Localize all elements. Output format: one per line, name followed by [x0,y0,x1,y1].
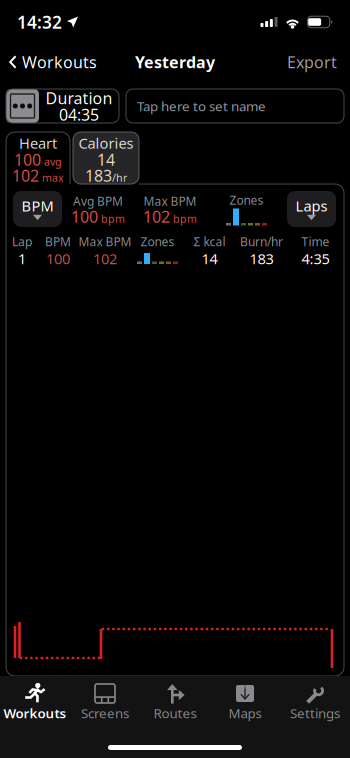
staticText: Settings [290,704,340,722]
staticText: Yesterday [135,51,215,73]
staticText: Avg BPM [73,193,123,209]
button[interactable]: Screens [70,679,140,723]
staticText: 102 [93,249,117,268]
staticText: avg [44,154,62,169]
button[interactable]: Calories [73,132,139,184]
staticText: Routes [153,704,196,722]
staticText: Laps [295,196,327,216]
staticText: Calories [78,133,133,153]
staticText: Tap here to set name [137,97,266,115]
staticText: 100 [46,249,70,268]
staticText: 183 [249,249,273,268]
staticText: Screens [81,704,129,722]
staticText: Burn/hr [240,233,283,249]
button[interactable]: Laps [287,191,336,227]
staticText: 14 [97,149,115,170]
staticText: 100 [71,206,98,227]
staticText: Maps [228,704,261,722]
button[interactable]: Routes [140,679,210,723]
staticText: Σ kcal [193,233,225,249]
staticText: 183 [85,165,112,186]
staticText: BPM [21,196,53,216]
staticText: Zones [140,233,174,249]
staticText: Workouts [22,51,97,73]
staticText: max [42,170,64,185]
staticText: Zones [229,192,263,208]
staticText: 04:35 [59,104,99,125]
staticText: Time [301,233,329,249]
staticText: Max BPM [143,193,196,209]
button[interactable]: Heart [6,132,70,184]
staticText: 14:32 [17,10,62,33]
staticText: bpm [101,211,125,226]
button[interactable]: Maps [210,679,280,723]
button[interactable]: Export [274,44,350,80]
staticText: 14 [201,249,217,268]
staticText: Lap [12,233,32,249]
staticText: Max BPM [78,233,131,249]
staticText: Heart [19,133,57,153]
staticText: Duration [45,87,112,109]
button[interactable]: Workouts [0,44,106,80]
button[interactable]: Duration [6,89,119,123]
button[interactable]: Settings [280,679,350,723]
staticText: 102 [12,165,39,186]
staticText: Workouts [3,704,66,722]
staticText: 4:35 [301,249,329,268]
staticText: 102 [143,206,170,227]
staticText: /hr [112,170,127,185]
staticText: 1 [18,249,26,268]
button[interactable]: Tap here to set name [126,89,344,123]
staticText: BPM [45,233,71,249]
button[interactable]: BPM [13,191,62,227]
staticText: bpm [173,211,197,226]
button[interactable]: Workouts [0,679,70,723]
staticText: 100 [14,149,41,170]
staticText: Export [287,51,337,73]
